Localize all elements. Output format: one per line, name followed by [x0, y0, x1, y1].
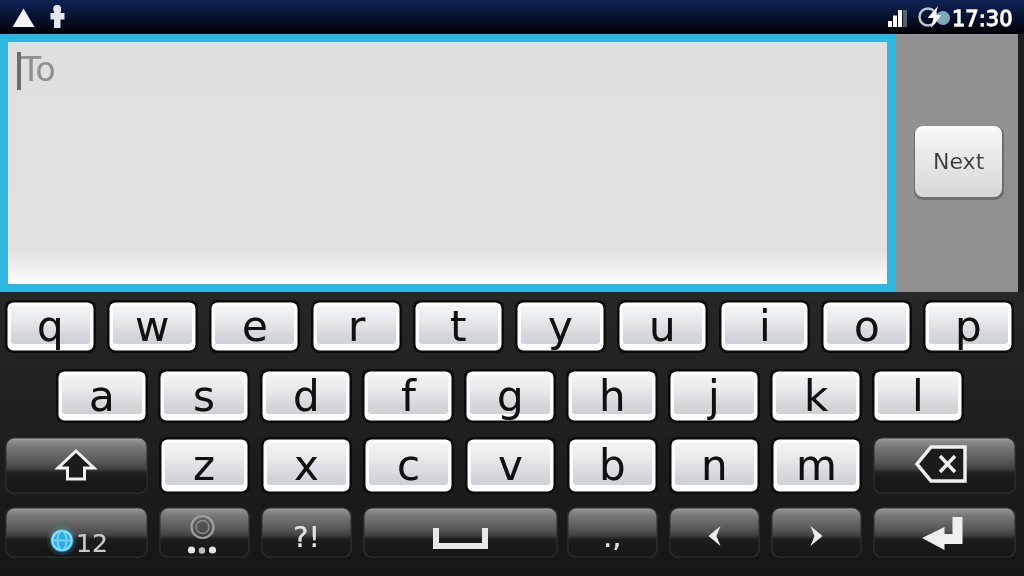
staticText: g [497, 372, 524, 421]
staticText: i [759, 302, 771, 351]
staticText: y [548, 302, 573, 351]
staticText: e [242, 302, 268, 351]
button[interactable]: b [567, 437, 658, 494]
button[interactable]: f [362, 369, 454, 423]
staticText: i [759, 302, 771, 351]
button[interactable]: Enter [873, 507, 1016, 558]
staticText: j [708, 372, 720, 421]
staticText: Next [933, 149, 985, 175]
button[interactable]: Shift [5, 437, 148, 494]
staticText: 12 [76, 529, 108, 558]
staticText: To [21, 50, 56, 88]
staticText: l [912, 372, 924, 421]
staticText: v [498, 441, 523, 490]
staticText: b [599, 441, 626, 490]
button[interactable]: n [669, 437, 760, 494]
staticText: ., [603, 520, 622, 554]
staticText: m [796, 441, 837, 490]
button[interactable]: w [107, 300, 198, 353]
button[interactable]: x [261, 437, 352, 494]
staticText: z [193, 441, 216, 490]
staticText: j [708, 372, 720, 421]
button[interactable]: s [158, 369, 250, 423]
staticText: m [796, 441, 837, 490]
staticText: f [401, 372, 416, 421]
staticText: u [649, 302, 676, 351]
button[interactable]: m [771, 437, 862, 494]
button[interactable]: Voice input [159, 507, 250, 558]
staticText: t [450, 302, 467, 351]
staticText: d [293, 372, 320, 421]
staticText: h [599, 372, 626, 421]
button[interactable]: c [363, 437, 454, 494]
staticText: t [450, 302, 467, 351]
button[interactable]: Space [363, 507, 558, 558]
staticText: q [37, 302, 64, 351]
button[interactable]: To [8, 42, 887, 284]
staticText: 17:30 [952, 7, 1013, 31]
staticText: b [599, 441, 626, 490]
staticText: g [497, 372, 524, 421]
button[interactable]: k [770, 369, 862, 423]
button[interactable]: Right [771, 507, 862, 558]
staticText: k [804, 372, 829, 421]
button[interactable]: z [159, 437, 250, 494]
button[interactable]: q [5, 300, 96, 353]
staticText: c [397, 441, 421, 490]
staticText: f [401, 372, 416, 421]
staticText: ?! [293, 520, 321, 554]
staticText: o [854, 302, 880, 351]
staticText: u [649, 302, 676, 351]
staticText: h [599, 372, 626, 421]
staticText: e [242, 302, 268, 351]
staticText: p [955, 302, 982, 351]
staticText: s [193, 372, 215, 421]
staticText: a [89, 372, 115, 421]
button[interactable]: i [719, 300, 810, 353]
staticText: z [193, 441, 216, 490]
button[interactable]: l [872, 369, 964, 423]
button[interactable]: Backspace [873, 437, 1016, 494]
button[interactable]: g [464, 369, 556, 423]
staticText: a [89, 372, 115, 421]
button[interactable]: a [56, 369, 148, 423]
button[interactable]: Next [913, 124, 1005, 200]
button[interactable]: u [617, 300, 708, 353]
staticText: n [701, 441, 728, 490]
staticText: k [804, 372, 829, 421]
button[interactable]: h [566, 369, 658, 423]
staticText: x [294, 441, 319, 490]
staticText: x [294, 441, 319, 490]
staticText: l [912, 372, 924, 421]
button[interactable]: v [465, 437, 556, 494]
staticText: w [135, 302, 170, 351]
staticText: d [293, 372, 320, 421]
button[interactable]: d [260, 369, 352, 423]
button[interactable]: ., [567, 507, 658, 558]
button[interactable]: j [668, 369, 760, 423]
button[interactable]: y [515, 300, 606, 353]
staticText: o [854, 302, 880, 351]
button[interactable]: p [923, 300, 1014, 353]
staticText: y [548, 302, 573, 351]
staticText: s [193, 372, 215, 421]
button[interactable]: t [413, 300, 504, 353]
staticText: r [348, 302, 366, 351]
button[interactable]: Left [669, 507, 760, 558]
button[interactable]: r [311, 300, 402, 353]
staticText: n [701, 441, 728, 490]
button[interactable]: ?! [261, 507, 352, 558]
button[interactable]: o [821, 300, 912, 353]
button[interactable]: e [209, 300, 300, 353]
staticText: q [37, 302, 64, 351]
staticText: w [135, 302, 170, 351]
staticText: v [498, 441, 523, 490]
staticText: r [348, 302, 366, 351]
staticText: c [397, 441, 421, 490]
staticText: p [955, 302, 982, 351]
button[interactable]: Switch to numbers [5, 507, 148, 558]
